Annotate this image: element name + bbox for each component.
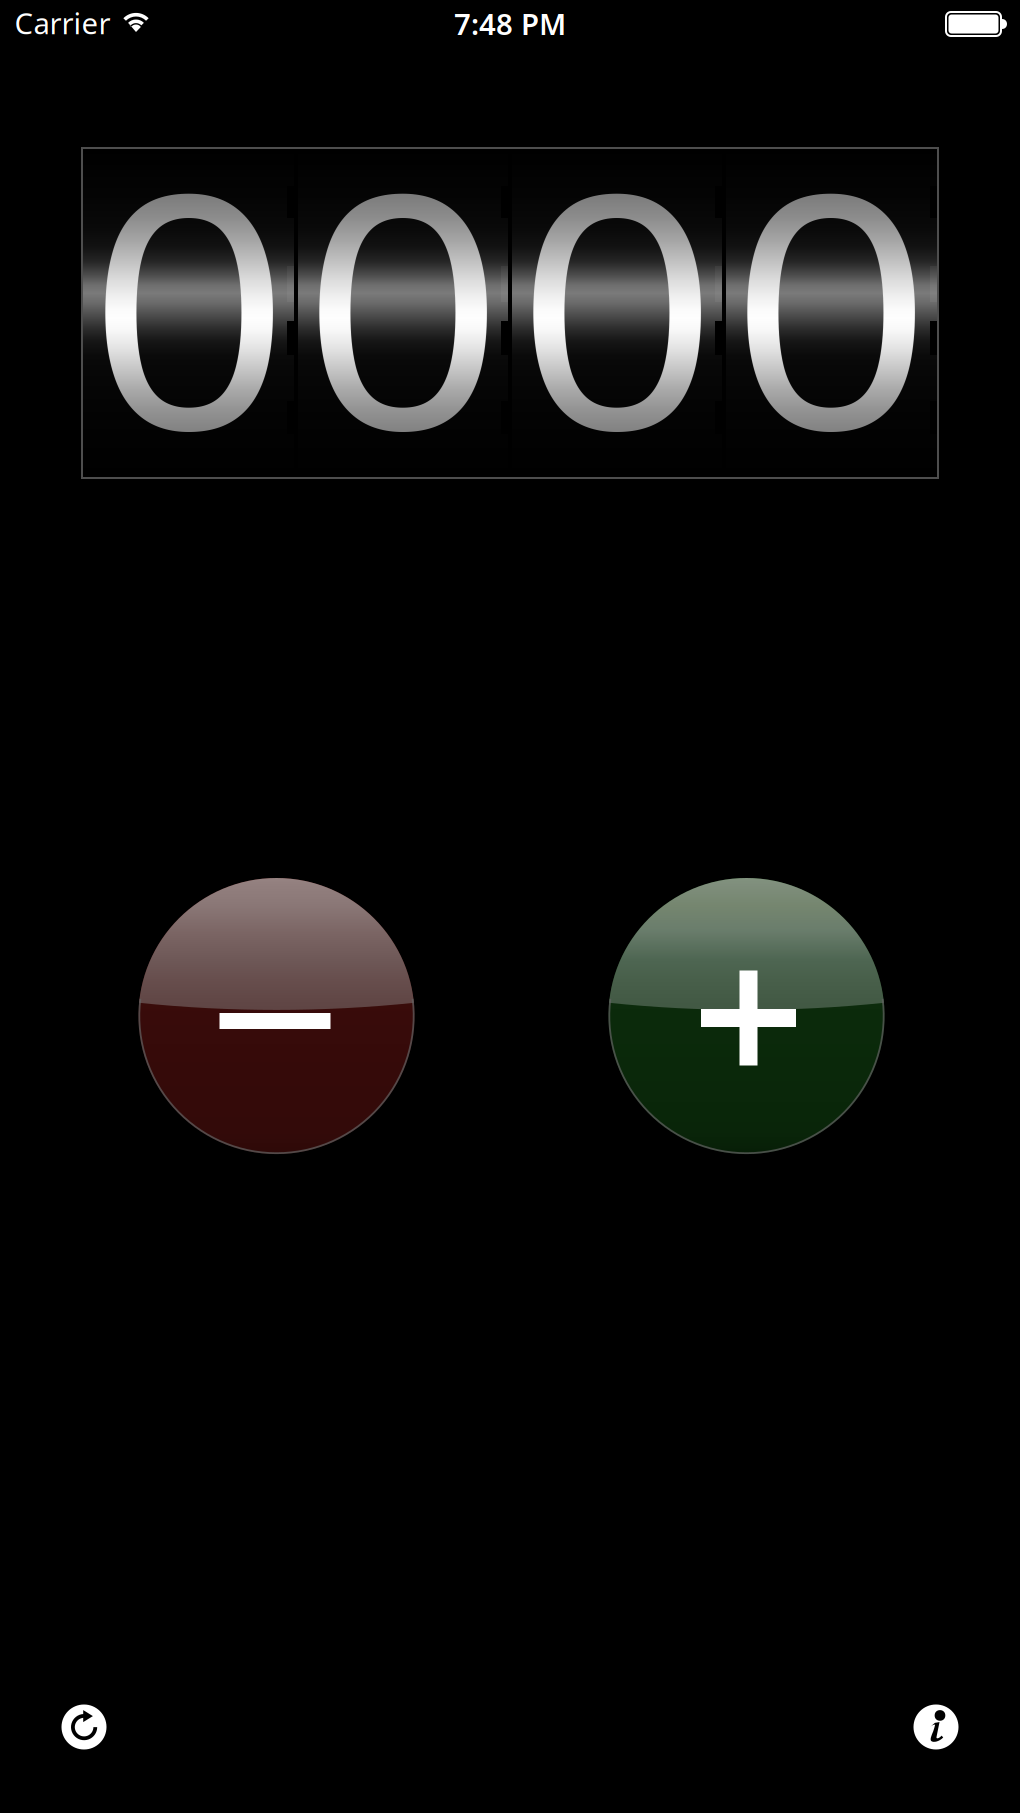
staticText: 7:48 PM [454,4,566,43]
button[interactable]: Info [902,1693,970,1761]
button[interactable]: Increment [608,878,884,1154]
button[interactable]: Decrement [138,878,414,1154]
button[interactable]: Reset [50,1693,118,1761]
staticText: Carrier [14,3,110,42]
